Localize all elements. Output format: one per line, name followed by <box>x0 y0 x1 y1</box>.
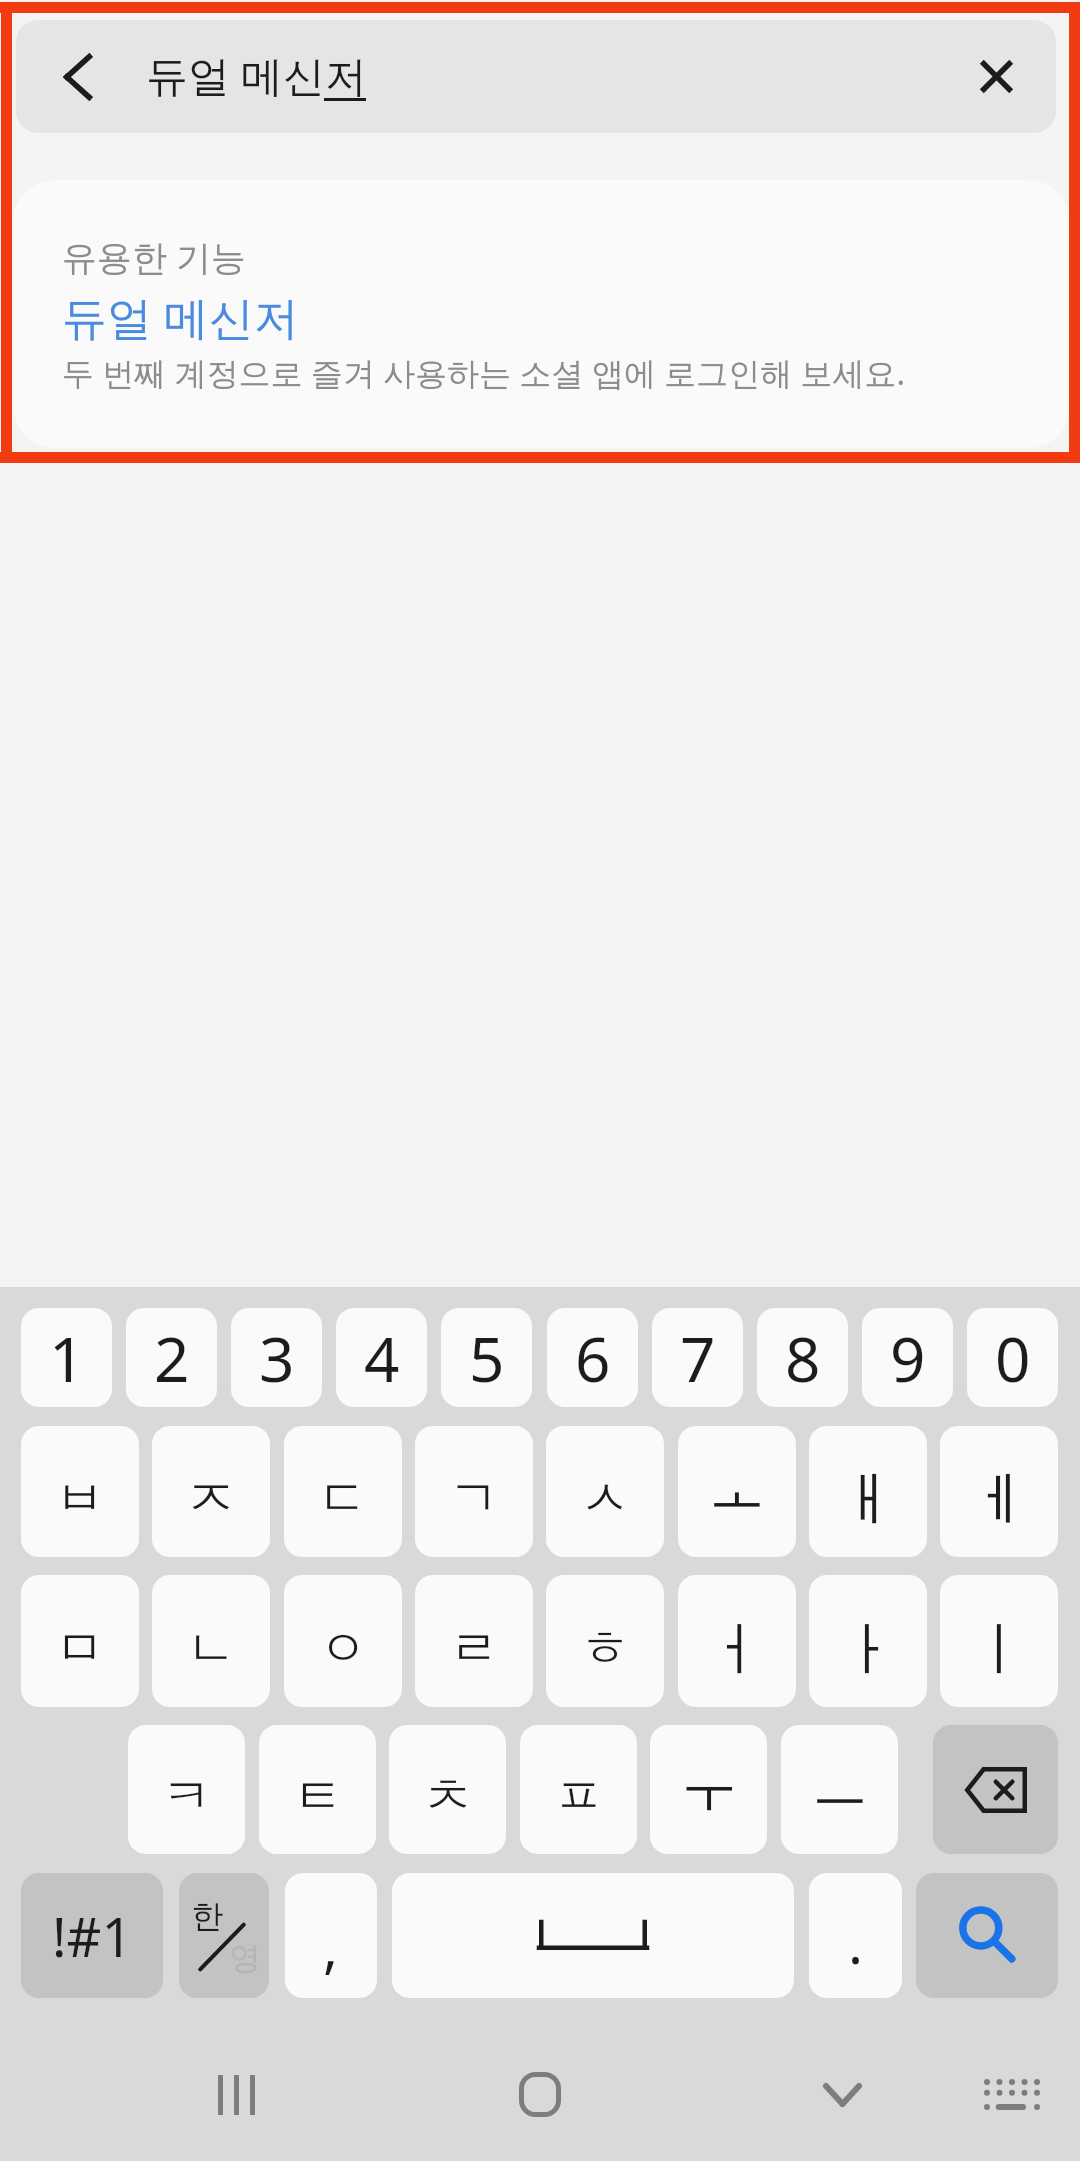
staticText: 영 <box>229 1938 261 1978</box>
button[interactable]: ㄱ <box>415 1426 533 1557</box>
staticText: ㅋ <box>162 1765 212 1828</box>
staticText: 5 <box>469 1316 505 1400</box>
button[interactable]: ㅈ <box>152 1426 270 1557</box>
button[interactable]: Switch keyboard <box>942 2013 1080 2161</box>
button[interactable]: 유용한 기능 <box>13 180 1070 448</box>
staticText: ㅗ <box>708 1452 766 1525</box>
button[interactable]: Clear search <box>936 20 1056 133</box>
button[interactable]: ㅇ <box>284 1575 402 1707</box>
staticText: 유용한 기능 <box>62 233 247 281</box>
staticText: ㅎ <box>580 1617 630 1680</box>
staticText: 듀얼 메신저 <box>146 46 367 103</box>
button[interactable]: Search <box>916 1873 1058 1998</box>
staticText: 9 <box>890 1316 926 1400</box>
button[interactable]: ㄹ <box>415 1575 533 1707</box>
button[interactable]: . <box>809 1873 902 1998</box>
button[interactable]: 8 <box>757 1308 848 1407</box>
staticText: ㄱ <box>449 1467 499 1530</box>
staticText: 4 <box>364 1316 400 1400</box>
button[interactable]: Backspace <box>933 1725 1058 1854</box>
staticText: ㅡ <box>811 1750 869 1823</box>
button[interactable]: ㄴ <box>152 1575 270 1707</box>
staticText: 두 번째 계정으로 즐겨 사용하는 소셜 앱에 로그인해 보세요. <box>62 351 906 395</box>
staticText: ㅁ <box>55 1617 105 1680</box>
button[interactable]: ㅏ <box>809 1575 927 1707</box>
button[interactable]: ㅔ <box>940 1426 1058 1557</box>
staticText: ㅔ <box>970 1463 1028 1536</box>
staticText: 8 <box>785 1316 821 1400</box>
button[interactable]: Language <box>179 1873 269 1998</box>
staticText: ㄹ <box>449 1617 499 1680</box>
staticText: . <box>848 1904 864 1980</box>
staticText: 7 <box>680 1316 716 1400</box>
button[interactable]: ㅁ <box>21 1575 139 1707</box>
button[interactable]: 1 <box>21 1308 112 1407</box>
button[interactable]: Home <box>460 2013 620 2161</box>
button[interactable]: 6 <box>547 1308 638 1407</box>
staticText: 0 <box>995 1316 1031 1400</box>
staticText: 6 <box>575 1316 611 1400</box>
button[interactable]: ㅋ <box>128 1725 245 1854</box>
button[interactable]: 3 <box>231 1308 322 1407</box>
staticText: ㅈ <box>186 1467 236 1530</box>
button[interactable]: ㄷ <box>284 1426 402 1557</box>
button[interactable]: ㅅ <box>546 1426 664 1557</box>
button[interactable]: ㅣ <box>940 1575 1058 1707</box>
staticText: ㅌ <box>293 1765 343 1828</box>
button[interactable]: ㅡ <box>781 1725 898 1854</box>
staticText: 1 <box>49 1316 85 1400</box>
button[interactable]: ㅎ <box>546 1575 664 1707</box>
button[interactable]: ㅂ <box>21 1426 139 1557</box>
staticText: 2 <box>154 1316 190 1400</box>
staticText: ㅊ <box>423 1765 473 1828</box>
button[interactable]: Hide keyboard <box>762 2013 922 2161</box>
button[interactable]: ㅓ <box>678 1575 796 1707</box>
button[interactable]: 5 <box>441 1308 532 1407</box>
staticText: , <box>323 1908 339 1984</box>
button[interactable]: 0 <box>967 1308 1058 1407</box>
staticText: ㅇ <box>318 1617 368 1680</box>
button[interactable]: ㅌ <box>259 1725 376 1854</box>
staticText: ㅓ <box>708 1613 766 1686</box>
staticText: 한 <box>191 1896 223 1936</box>
staticText: ㄷ <box>318 1467 368 1530</box>
staticText: ㅏ <box>839 1613 897 1686</box>
button[interactable]: 9 <box>862 1308 953 1407</box>
button[interactable]: , <box>285 1873 377 1998</box>
staticText: ㅂ <box>55 1467 105 1530</box>
button[interactable]: 4 <box>336 1308 427 1407</box>
button[interactable]: ㅗ <box>678 1426 796 1557</box>
button[interactable]: ㅍ <box>520 1725 637 1854</box>
button[interactable]: Space <box>392 1873 794 1998</box>
button[interactable]: 2 <box>126 1308 217 1407</box>
button[interactable]: ㅊ <box>389 1725 506 1854</box>
button[interactable]: Back <box>16 20 140 133</box>
staticText: ㅐ <box>839 1463 897 1536</box>
button[interactable]: Recents <box>156 2013 316 2161</box>
button[interactable]: ㅜ <box>650 1725 767 1854</box>
staticText: 듀얼 메신저 <box>62 286 299 347</box>
staticText: ㄴ <box>186 1617 236 1680</box>
button[interactable]: !#1 <box>21 1873 163 1998</box>
button[interactable]: 7 <box>652 1308 743 1407</box>
staticText: ㅅ <box>580 1467 630 1530</box>
staticText: ㅍ <box>554 1765 604 1828</box>
button[interactable]: ㅐ <box>809 1426 927 1557</box>
staticText: ㅜ <box>680 1750 738 1823</box>
staticText: !#1 <box>52 1899 133 1973</box>
staticText: ㅣ <box>970 1613 1028 1686</box>
staticText: 3 <box>259 1316 295 1400</box>
